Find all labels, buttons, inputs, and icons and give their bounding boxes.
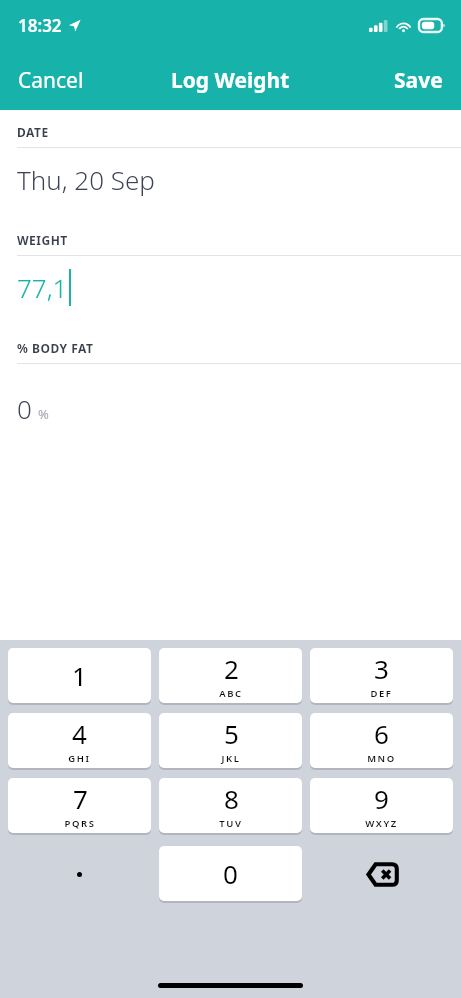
button[interactable]: Thu, 20 Sep	[0, 148, 461, 210]
staticText: 7	[73, 781, 88, 816]
staticText: %	[38, 405, 49, 423]
staticText: 8	[224, 781, 239, 816]
staticText: WEIGHT	[17, 232, 68, 248]
button[interactable]: 3	[310, 648, 453, 703]
staticText: JKL	[221, 752, 241, 765]
staticText: Cancel	[18, 66, 84, 95]
button[interactable]: 6	[310, 713, 453, 768]
button[interactable]: 7	[8, 778, 151, 833]
button[interactable]: 0	[159, 846, 302, 901]
button[interactable]: 0	[0, 364, 461, 426]
staticText: PQRS	[64, 817, 96, 830]
button[interactable]: Save	[376, 56, 461, 105]
staticText: 3	[374, 651, 389, 686]
staticText: 1	[72, 658, 87, 693]
staticText: Log Weight	[171, 66, 290, 95]
button[interactable]: Cancel	[0, 56, 102, 105]
staticText: 6	[374, 716, 389, 751]
staticText: 0	[17, 391, 32, 426]
button[interactable]: Decimal point	[8, 846, 151, 903]
staticText: ABC	[219, 687, 243, 700]
staticText: DEF	[370, 687, 393, 700]
button[interactable]: 5	[159, 713, 302, 768]
button[interactable]: 9	[310, 778, 453, 833]
staticText: GHI	[68, 752, 91, 765]
staticText: 18:32	[18, 14, 62, 37]
staticText: 4	[72, 716, 87, 751]
staticText: 9	[374, 781, 389, 816]
button[interactable]: 1	[8, 648, 151, 703]
button[interactable]: 4	[8, 713, 151, 768]
button[interactable]: 8	[159, 778, 302, 833]
staticText: 77,1	[17, 270, 68, 305]
button[interactable]: 2	[159, 648, 302, 703]
staticText: MNO	[367, 752, 396, 765]
staticText: % BODY FAT	[17, 340, 94, 356]
button[interactable]: Delete	[310, 846, 453, 903]
staticText: DATE	[17, 124, 49, 140]
staticText: 2	[224, 651, 239, 686]
staticText: 5	[224, 716, 239, 751]
staticText: TUV	[219, 817, 243, 830]
staticText: 0	[223, 856, 238, 891]
staticText: WXYZ	[365, 817, 398, 830]
staticText: Save	[394, 66, 443, 95]
button[interactable]: 77,1	[0, 256, 461, 318]
staticText: Thu, 20 Sep	[17, 162, 155, 197]
